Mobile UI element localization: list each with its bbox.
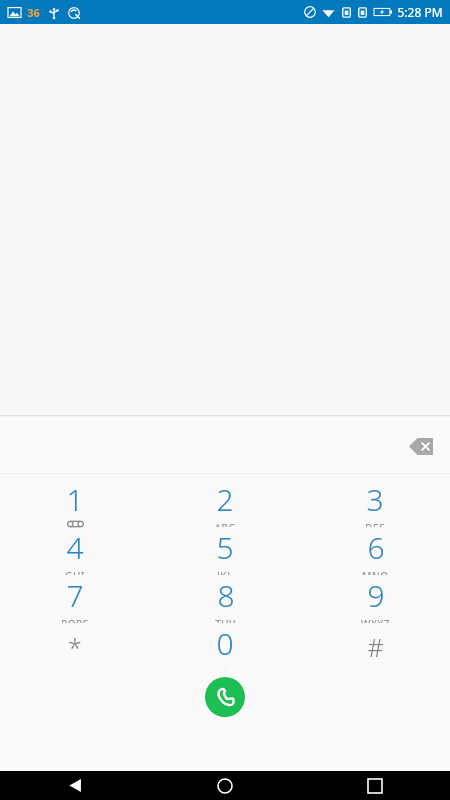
staticText: 3 [366, 479, 384, 520]
button[interactable]: 2 [150, 479, 300, 527]
button[interactable]: 3 [300, 479, 450, 527]
staticText: 4 [66, 527, 84, 568]
staticText: 2 [216, 479, 234, 520]
button[interactable]: 5 [150, 527, 300, 575]
button[interactable]: Backspace [398, 423, 444, 469]
button[interactable]: 0 [150, 623, 300, 671]
button[interactable]: 6 [300, 527, 450, 575]
staticText: TUV [215, 617, 236, 623]
staticText: * [68, 630, 82, 664]
staticText: 6 [367, 527, 385, 568]
staticText: 7 [66, 575, 84, 616]
staticText: WXYZ [361, 617, 390, 623]
staticText: PQRS [61, 617, 89, 623]
button[interactable]: 9 [300, 575, 450, 623]
staticText: 5 [216, 527, 234, 568]
button[interactable]: 4 [0, 527, 150, 575]
staticText: # [367, 630, 384, 664]
button[interactable]: # [300, 623, 450, 671]
staticText: JKL [217, 569, 233, 575]
button[interactable]: Recent apps [300, 771, 450, 800]
staticText: 0 [216, 623, 234, 664]
staticText: 1 [66, 479, 84, 520]
button[interactable]: 7 [0, 575, 150, 623]
button[interactable]: Call [205, 677, 245, 717]
staticText: 36 [27, 5, 40, 20]
button[interactable]: Home [150, 771, 300, 800]
staticText: DEF [365, 521, 385, 527]
staticText: + [222, 665, 229, 671]
staticText: GHI [65, 569, 85, 575]
staticText: 5:28 PM [397, 4, 443, 20]
staticText: 8 [217, 575, 235, 616]
button[interactable]: * [0, 623, 150, 671]
button[interactable]: Back [0, 771, 150, 800]
button[interactable]: 1 [0, 479, 150, 527]
button[interactable]: 8 [150, 575, 300, 623]
staticText: 9 [367, 575, 385, 616]
staticText: ABC [214, 521, 236, 527]
staticText: MNO [362, 569, 389, 575]
